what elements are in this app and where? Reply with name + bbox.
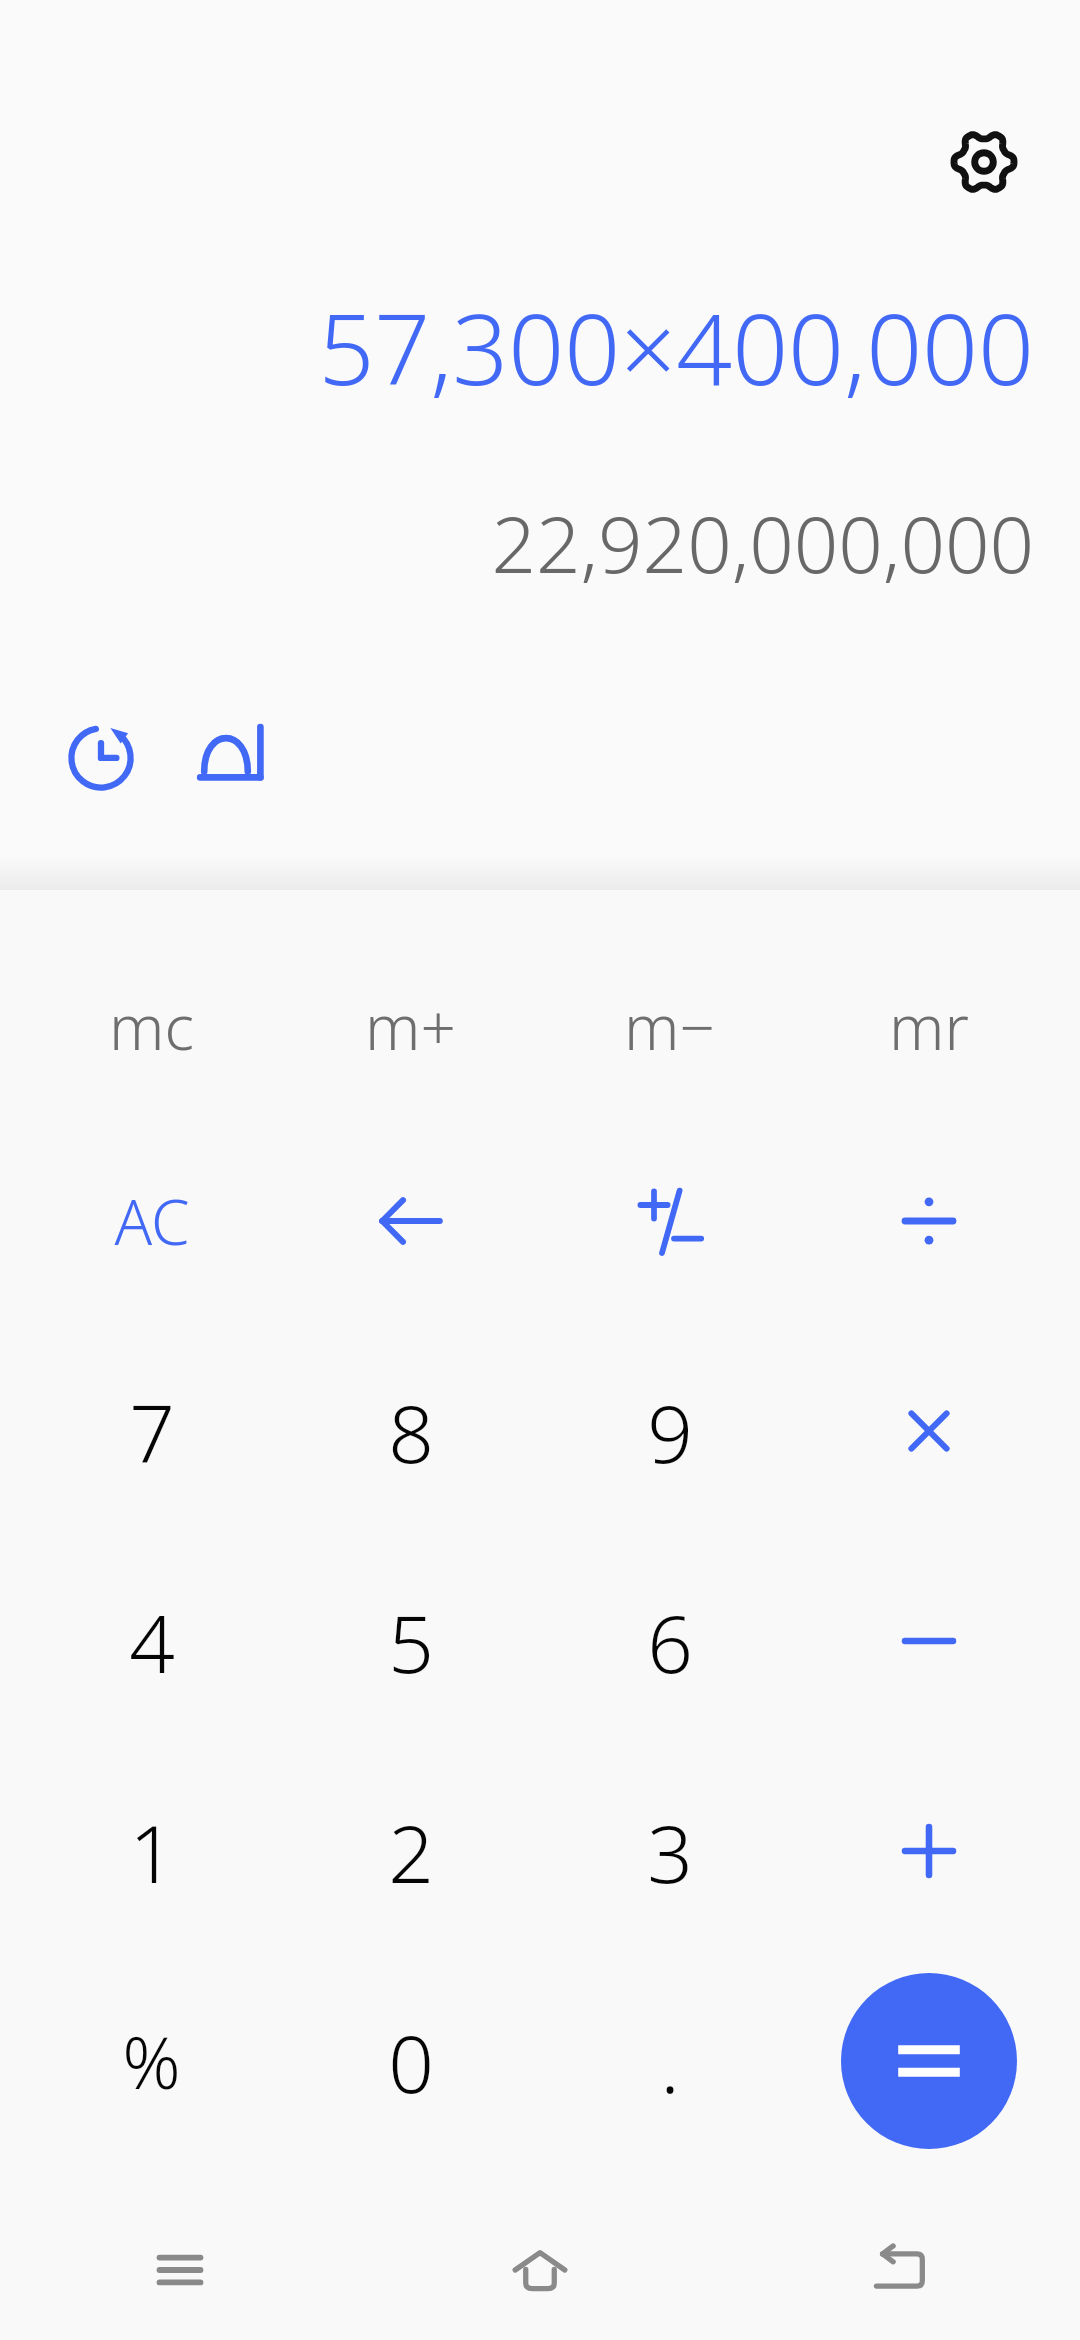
staticText: mr	[889, 984, 969, 1068]
button[interactable]: Plus minus	[540, 1116, 799, 1326]
button[interactable]: Back	[720, 2200, 1080, 2340]
staticText: 6	[647, 1587, 693, 1696]
button[interactable]: Divide	[799, 1116, 1058, 1326]
button[interactable]: mc	[22, 936, 281, 1116]
button[interactable]: Equals	[841, 1973, 1017, 2149]
button[interactable]: Minus	[799, 1536, 1058, 1746]
button[interactable]: 3	[540, 1746, 799, 1956]
button[interactable]: Graph	[176, 700, 286, 810]
button[interactable]: Settings	[934, 112, 1034, 212]
staticText: 4	[129, 1587, 175, 1696]
staticText: 57,300×400,000	[318, 280, 1034, 413]
button[interactable]: .	[540, 1956, 799, 2166]
button[interactable]: AC	[22, 1116, 281, 1326]
button[interactable]: %	[22, 1956, 281, 2166]
staticText: AC	[114, 1179, 190, 1263]
button[interactable]: Multiply	[799, 1326, 1058, 1536]
button[interactable]: m−	[540, 936, 799, 1116]
staticText: 9	[647, 1377, 693, 1486]
button[interactable]: 9	[540, 1326, 799, 1536]
button[interactable]: Recent apps	[0, 2200, 360, 2340]
staticText: .	[660, 2007, 680, 2116]
button[interactable]: Backspace	[281, 1116, 540, 1326]
button[interactable]: 8	[281, 1326, 540, 1536]
button[interactable]: 0	[281, 1956, 540, 2166]
button[interactable]: mr	[799, 936, 1058, 1116]
staticText: 8	[388, 1377, 434, 1486]
staticText: mc	[109, 984, 194, 1068]
button[interactable]: 4	[22, 1536, 281, 1746]
button[interactable]: Home	[360, 2200, 720, 2340]
staticText: 2	[388, 1797, 434, 1906]
button[interactable]: 7	[22, 1326, 281, 1536]
staticText: m−	[624, 984, 715, 1068]
button[interactable]: 2	[281, 1746, 540, 1956]
staticText: 1	[129, 1797, 175, 1906]
button[interactable]: Plus	[799, 1746, 1058, 1956]
staticText: 22,920,000,000	[491, 490, 1034, 596]
staticText: %	[122, 2012, 181, 2110]
staticText: 5	[388, 1587, 434, 1696]
button[interactable]: 1	[22, 1746, 281, 1956]
button[interactable]: 5	[281, 1536, 540, 1746]
button[interactable]: 6	[540, 1536, 799, 1746]
staticText: m+	[365, 984, 456, 1068]
staticText: 0	[388, 2007, 434, 2116]
staticText: 3	[647, 1797, 693, 1906]
staticText: 7	[129, 1377, 175, 1486]
button[interactable]: History	[46, 700, 156, 810]
button[interactable]: m+	[281, 936, 540, 1116]
